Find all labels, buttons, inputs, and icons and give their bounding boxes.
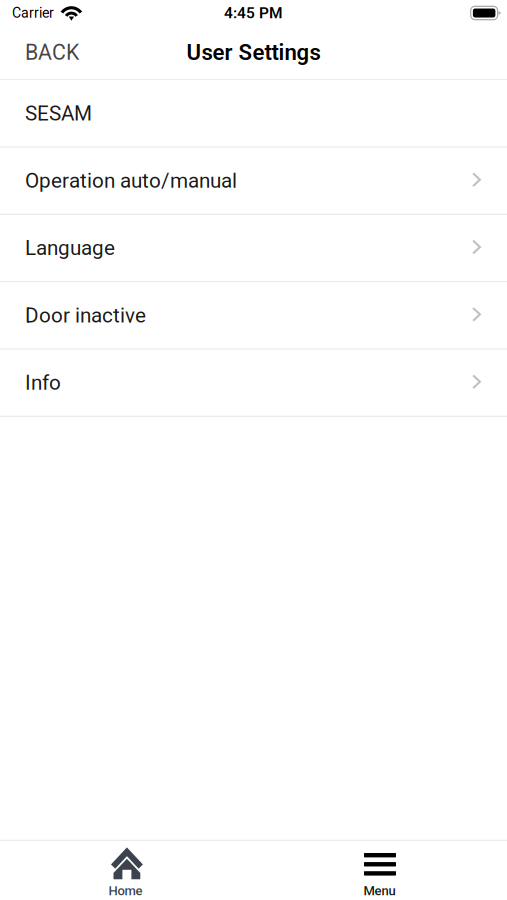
staticText: Info [25, 371, 61, 395]
button[interactable]: Door inactive [0, 282, 507, 348]
button[interactable]: SESAM [0, 80, 507, 146]
staticText: Carrier [12, 5, 54, 21]
button[interactable]: Menu [253, 841, 506, 900]
staticText: User Settings [186, 39, 320, 65]
staticText: BACK [25, 40, 79, 65]
staticText: Operation auto/manual [25, 169, 237, 193]
staticText: Menu [363, 883, 395, 898]
staticText: Language [25, 236, 115, 260]
staticText: Home [108, 883, 142, 898]
staticText: Door inactive [25, 303, 146, 327]
button[interactable]: Info [0, 350, 507, 416]
button[interactable]: Home [0, 841, 253, 900]
button[interactable]: Operation auto/manual [0, 148, 507, 214]
staticText: SESAM [25, 101, 92, 125]
button[interactable]: BACK [0, 26, 97, 79]
staticText: 4:45 PM [224, 4, 283, 22]
button[interactable]: Language [0, 215, 507, 281]
